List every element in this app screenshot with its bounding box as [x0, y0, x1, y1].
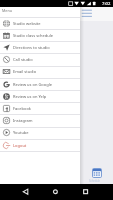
staticText: Directions to studio — [13, 45, 50, 50]
staticText: Facebook — [13, 106, 31, 111]
staticText: Review us on Google — [13, 82, 52, 87]
button[interactable]: Instagram — [0, 115, 80, 126]
staticText: Studio website — [13, 21, 41, 26]
button[interactable]: Studio class schedule — [0, 30, 80, 41]
staticText: Studio class schedule — [13, 33, 53, 38]
staticText: Email studio — [13, 69, 37, 74]
staticText: Call studio — [13, 57, 33, 62]
button[interactable]: Review us on Google — [0, 79, 80, 90]
staticText: 7:02 — [102, 1, 111, 7]
staticText: Logout — [13, 143, 27, 148]
button[interactable]: Email studio — [0, 66, 80, 77]
staticText: Youtube — [13, 130, 29, 135]
button[interactable]: Studio website — [0, 18, 80, 29]
button[interactable]: Review us on Yelp — [0, 91, 80, 102]
button[interactable]: Open navigation menu — [80, 8, 94, 19]
button[interactable]: Call studio — [0, 54, 80, 65]
staticText: Menu — [2, 8, 12, 13]
button[interactable]: Class schedule — [92, 168, 102, 178]
staticText: Review us on Yelp — [13, 94, 47, 99]
staticText: Schedule — [89, 179, 101, 183]
button[interactable]: Directions to studio — [0, 42, 80, 53]
staticText: Instagram — [13, 118, 33, 123]
button[interactable]: Youtube — [0, 127, 80, 138]
button[interactable]: Facebook — [0, 103, 80, 114]
button[interactable]: Logout — [0, 140, 80, 151]
